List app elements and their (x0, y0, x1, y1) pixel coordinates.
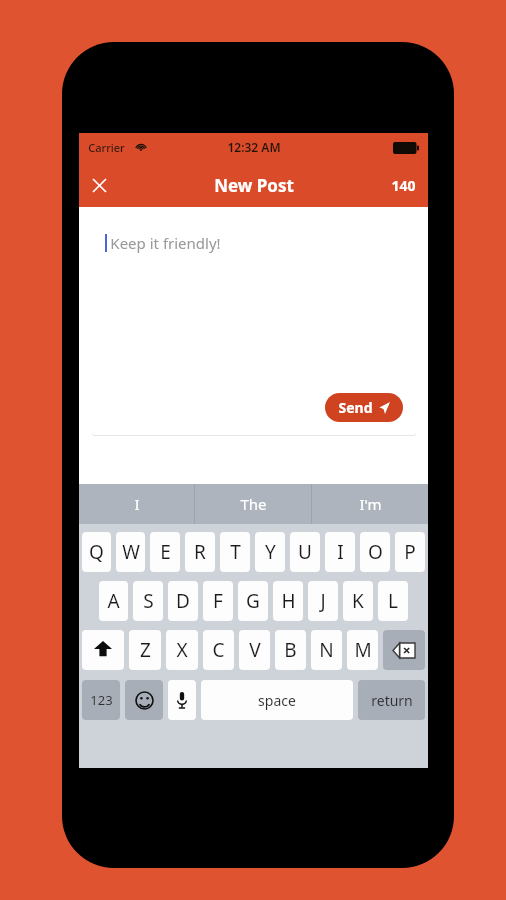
button[interactable]: T (220, 532, 250, 572)
staticText: B (284, 637, 297, 663)
button[interactable]: Send (325, 393, 403, 422)
staticText: 12:32 AM (227, 139, 281, 155)
button[interactable]: return (358, 680, 425, 720)
staticText: F (213, 588, 223, 614)
button[interactable]: W (116, 532, 145, 572)
button[interactable]: Dictate (168, 680, 196, 720)
staticText: Q (89, 539, 104, 565)
button[interactable]: 123 (82, 680, 120, 720)
staticText: I'm (359, 494, 382, 514)
staticText: Z (140, 637, 151, 663)
button[interactable]: A (99, 581, 128, 621)
staticText: Keep it friendly! (110, 233, 221, 253)
staticText: T (230, 539, 241, 565)
button[interactable]: I (325, 532, 355, 572)
staticText: space (258, 691, 296, 710)
button[interactable]: M (347, 630, 378, 670)
staticText: L (388, 588, 398, 614)
staticText: A (107, 588, 120, 614)
staticText: V (249, 637, 261, 663)
staticText: O (368, 539, 383, 565)
button[interactable]: E (150, 532, 180, 572)
button[interactable]: R (185, 532, 215, 572)
staticText: Send (338, 398, 373, 417)
button[interactable]: U (290, 532, 320, 572)
button[interactable]: D (168, 581, 198, 621)
button[interactable]: K (343, 581, 373, 621)
button[interactable]: I'm (312, 484, 428, 524)
button[interactable]: The (195, 484, 311, 524)
staticText: I (337, 539, 344, 565)
button[interactable]: J (308, 581, 338, 621)
button[interactable]: Keep it friendly! (92, 220, 416, 435)
button[interactable]: Emoji (125, 680, 163, 720)
button[interactable]: O (360, 532, 390, 572)
button[interactable]: S (133, 581, 163, 621)
staticText: G (246, 588, 260, 614)
staticText: Y (265, 539, 276, 565)
staticText: N (319, 637, 334, 663)
button[interactable]: I (79, 484, 194, 524)
staticText: 140 (391, 176, 416, 195)
button[interactable]: Shift (82, 630, 124, 670)
staticText: P (404, 539, 416, 565)
staticText: New Post (214, 174, 294, 197)
button[interactable]: Z (129, 630, 161, 670)
button[interactable]: Y (255, 532, 285, 572)
button[interactable]: L (378, 581, 408, 621)
button[interactable]: P (395, 532, 425, 572)
staticText: H (281, 588, 296, 614)
staticText: Carrier (88, 140, 125, 155)
staticText: I (134, 494, 140, 514)
staticText: J (320, 588, 326, 614)
button[interactable]: Backspace (383, 630, 425, 670)
staticText: The (240, 494, 267, 514)
staticText: X (176, 637, 188, 663)
button[interactable]: 140 (379, 166, 428, 205)
button[interactable]: G (238, 581, 268, 621)
staticText: M (354, 637, 372, 663)
button[interactable]: B (275, 630, 306, 670)
staticText: D (176, 588, 190, 614)
button[interactable]: C (203, 630, 234, 670)
button[interactable]: N (311, 630, 342, 670)
button[interactable]: Close (79, 165, 119, 205)
staticText: C (212, 637, 225, 663)
staticText: return (371, 691, 413, 710)
staticText: R (194, 539, 206, 565)
button[interactable]: F (203, 581, 233, 621)
staticText: E (160, 539, 171, 565)
staticText: U (298, 539, 312, 565)
button[interactable]: Q (82, 532, 111, 572)
staticText: S (143, 588, 154, 614)
button[interactable]: space (201, 680, 353, 720)
staticText: K (352, 588, 364, 614)
staticText: 123 (90, 691, 113, 709)
button[interactable]: V (239, 630, 270, 670)
button[interactable]: X (166, 630, 198, 670)
staticText: W (122, 539, 140, 565)
button[interactable]: H (273, 581, 303, 621)
